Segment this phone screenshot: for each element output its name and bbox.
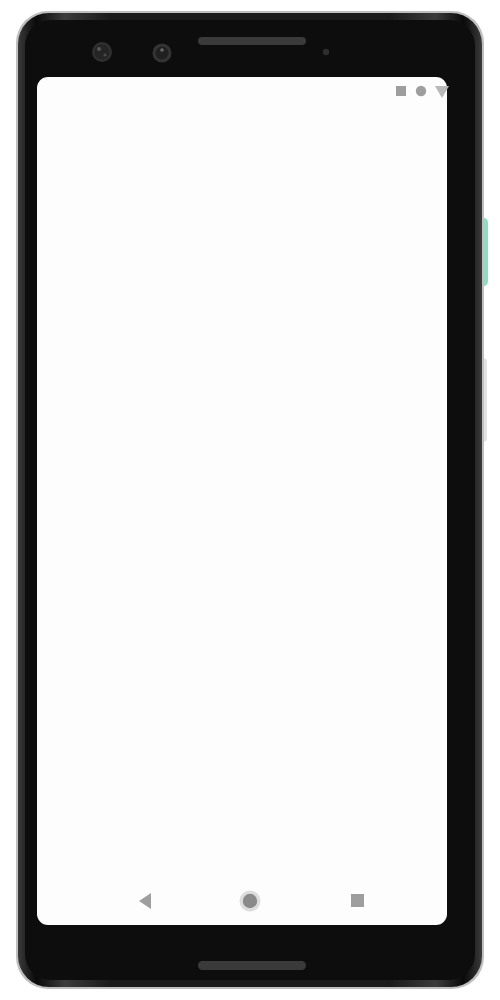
button[interactable]: Back — [128, 884, 162, 918]
button[interactable]: Volume — [474, 356, 488, 444]
button[interactable]: Home — [233, 884, 267, 918]
button[interactable]: Power — [474, 216, 488, 288]
button[interactable]: Recent apps — [340, 884, 374, 918]
button[interactable]: Status bar — [390, 82, 450, 102]
